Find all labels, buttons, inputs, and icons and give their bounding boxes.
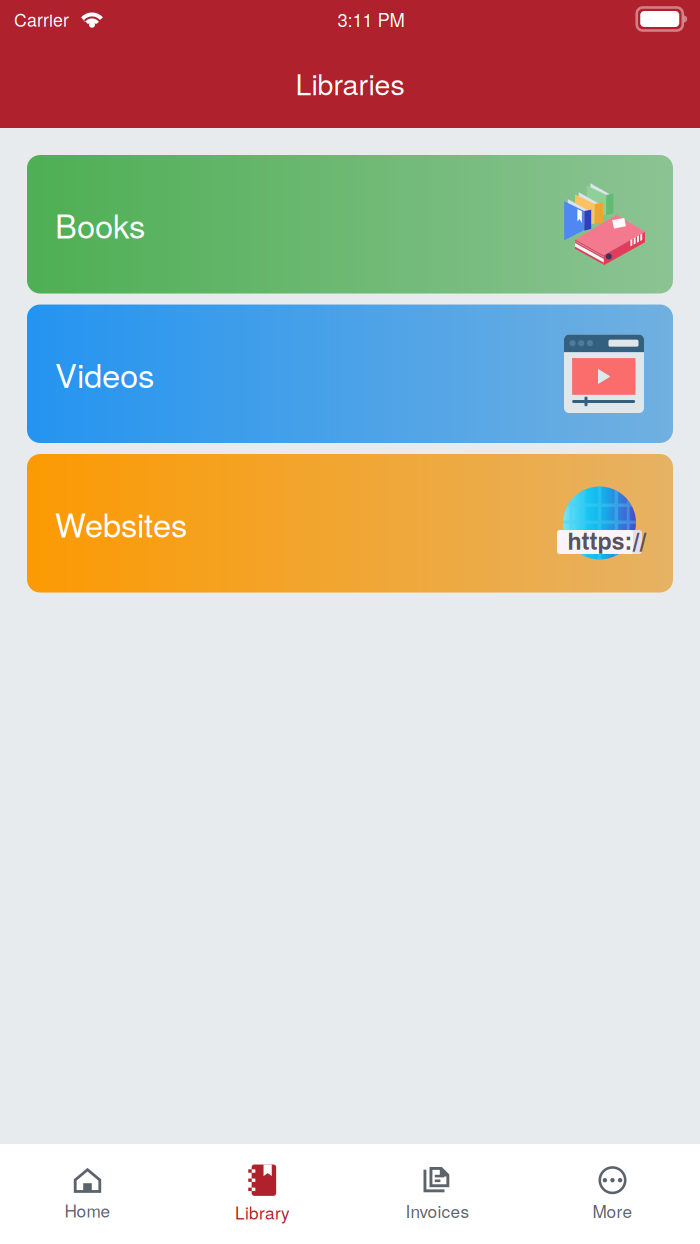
button[interactable]: Videos [27, 304, 673, 443]
staticText: 3:11 PM [337, 6, 404, 32]
staticText: Home [64, 1198, 110, 1222]
staticText: Library [235, 1200, 290, 1224]
button[interactable]: Books [27, 155, 673, 293]
staticText: Libraries [295, 63, 404, 103]
staticText: More [592, 1198, 632, 1223]
button[interactable]: Home [0, 1154, 175, 1234]
button[interactable]: Library [175, 1151, 350, 1236]
staticText: https:// [567, 529, 646, 555]
staticText: Invoices [405, 1198, 469, 1223]
button[interactable]: Websites [27, 454, 673, 592]
button[interactable]: More [525, 1153, 700, 1235]
staticText: Carrier [14, 6, 69, 32]
staticText: Books [55, 201, 145, 248]
staticText: Videos [55, 350, 154, 397]
staticText: Websites [55, 500, 187, 547]
button[interactable]: Invoices [350, 1153, 525, 1235]
